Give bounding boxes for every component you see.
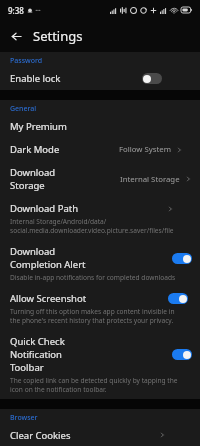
button[interactable]: Allow Screenshot (0, 287, 200, 330)
staticText: The copied link can be detected quickly … (10, 376, 179, 394)
staticText: Enable lock (10, 72, 61, 85)
staticText: Download Completion Alert (10, 245, 91, 271)
button[interactable]: Dark Mode (0, 138, 200, 161)
staticText: Quick Check Notification Toolbar (10, 335, 91, 374)
staticText: Settings (33, 27, 83, 45)
staticText: Internal Storage/Android/data/social.med… (10, 217, 179, 235)
staticText: Internal Storage (120, 174, 180, 185)
staticText: Allow Screenshot (10, 292, 87, 305)
staticText: Turning off this option makes app conten… (10, 307, 179, 325)
button[interactable]: Toggle on (172, 253, 192, 264)
staticText: Follow System (119, 144, 171, 155)
button[interactable]: Quick Check Notification Toolbar (0, 330, 200, 399)
button[interactable]: Download Storage (0, 161, 200, 197)
staticText: Disable in-app notifications for complet… (10, 273, 179, 282)
button[interactable]: Toggle on (168, 293, 188, 304)
staticText: Password (10, 56, 43, 66)
staticText: My Premium (10, 120, 67, 133)
button[interactable]: My Premium (0, 115, 200, 138)
staticText: Dark Mode (10, 143, 60, 156)
button[interactable]: Toggle on (172, 349, 192, 360)
button[interactable]: Toggle off (142, 73, 162, 84)
staticText: Clear Cookies (10, 429, 71, 441)
button[interactable]: Download Path (0, 197, 200, 240)
staticText: 9:38 (8, 5, 24, 16)
staticText: Download Path (10, 202, 79, 215)
staticText: General (10, 104, 37, 114)
button[interactable]: Clear Cookies (0, 424, 200, 446)
button[interactable]: Download Completion Alert (0, 240, 200, 287)
staticText: Download Storage (10, 166, 65, 192)
staticText: Browser (10, 413, 38, 423)
button[interactable]: Enable lock (0, 67, 200, 90)
button[interactable]: Back (6, 26, 26, 46)
